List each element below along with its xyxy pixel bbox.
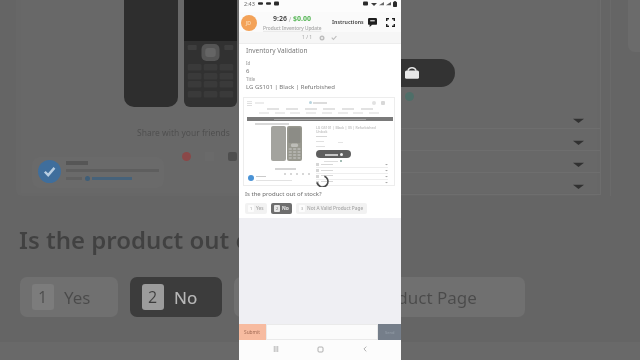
button[interactable]: Fullscreen: [384, 16, 397, 29]
staticText: 2: [276, 206, 279, 211]
staticText: Instructions: [332, 18, 364, 25]
staticText: No: [174, 286, 198, 309]
staticText: 1 / 1: [302, 34, 313, 41]
staticText: LG GS101 | Black | XS | Refurbished: [316, 125, 376, 130]
button[interactable]: Done: [329, 33, 338, 42]
staticText: 2:43: [244, 0, 255, 7]
staticText: Not A Valid Product Page: [278, 286, 477, 309]
staticText: Submit: [244, 329, 261, 336]
button[interactable]: Chat: [366, 16, 379, 29]
staticText: $0.00: [293, 14, 311, 24]
button[interactable]: 2: [271, 203, 292, 214]
button[interactable]: Back: [357, 341, 373, 357]
staticText: No: [282, 205, 289, 212]
staticText: 1: [38, 286, 48, 308]
button[interactable]: Recents: [268, 341, 284, 357]
button[interactable]: Submit: [239, 324, 266, 340]
staticText: Share with your friends: [137, 127, 230, 139]
staticText: 2: [148, 286, 158, 308]
button[interactable]: Instructions: [330, 17, 366, 26]
staticText: Not A Valid Product Page: [307, 205, 364, 212]
button[interactable]: Profile: [241, 15, 257, 31]
staticText: 9:26: [273, 14, 287, 24]
staticText: /: [287, 15, 293, 24]
staticText: JD: [246, 20, 252, 27]
staticText: Is the product out of stock?: [19, 223, 340, 256]
button[interactable]: [266, 324, 378, 340]
button[interactable]: 1: [245, 203, 267, 214]
button[interactable]: Settings: [317, 33, 326, 42]
staticText: LG GS101 | Black | Refurbished: [246, 83, 335, 91]
staticText: Yes: [64, 286, 91, 309]
staticText: Id: [246, 60, 251, 66]
staticText: Yes: [256, 205, 264, 212]
staticText: Inventory Validation: [246, 46, 308, 55]
button[interactable]: Home: [312, 341, 328, 357]
button[interactable]: 3: [296, 203, 367, 214]
staticText: 6: [246, 67, 250, 75]
staticText: 1: [250, 206, 253, 211]
staticText: Product Inventory Update: [263, 25, 322, 32]
staticText: Send: [385, 330, 395, 335]
staticText: Is the product out of stock?: [245, 190, 322, 198]
staticText: Unlock: [316, 129, 328, 134]
staticText: Title: [246, 76, 256, 82]
staticText: 3: [301, 206, 304, 211]
